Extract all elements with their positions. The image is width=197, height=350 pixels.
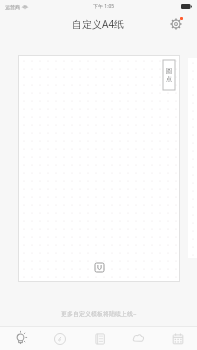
staticText: 自定义A4纸 [72, 17, 125, 31]
button[interactable]: Cloud [119, 327, 158, 350]
button[interactable]: Settings [168, 16, 184, 32]
button[interactable]: 圆 [19, 56, 179, 281]
staticText: 更多自定义模板将陆续上线~ [61, 310, 137, 318]
staticText: 下午 1:05 [93, 3, 115, 10]
button[interactable]: Notebook [80, 327, 119, 350]
button[interactable]: Calendar [158, 327, 197, 350]
button[interactable]: 圆 [163, 60, 175, 90]
staticText: 运营商 [5, 4, 20, 10]
staticText: 点 [166, 75, 172, 83]
button[interactable]: Ideas [0, 327, 40, 350]
staticText: 圆 [166, 67, 172, 75]
button[interactable]: Draw [40, 327, 80, 350]
